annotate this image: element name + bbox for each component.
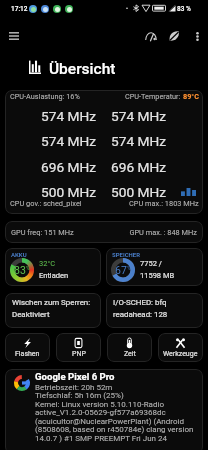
staticText: (acuicultor@NuclearPowerPlant) (Android xyxy=(35,417,184,426)
staticText: CPU max.: 1803 MHz xyxy=(129,199,199,208)
staticText: 7752 / xyxy=(140,259,162,268)
staticText: % xyxy=(26,265,30,271)
staticText: 11598 MB xyxy=(140,271,175,280)
staticText: active_V1.2.0-05629-gf577a69368dc xyxy=(35,408,166,417)
button[interactable]: Navigation menu xyxy=(3,25,25,47)
staticText: 14.0.7 ) #1 SMP PREEMPT Fri Jun 24 xyxy=(35,434,168,443)
staticText: 83 xyxy=(14,264,26,276)
button[interactable]: More options xyxy=(188,27,206,45)
button[interactable]: Google Pixel 6 Pro xyxy=(5,369,203,450)
staticText: Flashen xyxy=(15,350,40,358)
staticText: Deaktiviert xyxy=(12,310,50,319)
staticText: CPU-Auslastung: 16% xyxy=(10,92,80,101)
staticText: % xyxy=(127,265,131,271)
button[interactable]: Zeit xyxy=(107,333,152,362)
staticText: 696 MHz xyxy=(111,159,166,175)
staticText: 696 MHz xyxy=(5,159,96,175)
staticText: GPU freq: 151 MHz xyxy=(11,228,104,237)
staticText: 83 % xyxy=(177,5,191,13)
staticText: Wischen zum Sperren: xyxy=(12,298,91,307)
staticText: I/O-SCHED: bfq xyxy=(113,298,167,307)
staticText: 500 MHz xyxy=(5,184,96,200)
button[interactable]: Performance profile xyxy=(141,26,161,46)
staticText: SPEICHER xyxy=(112,251,141,258)
staticText: PNP xyxy=(72,350,86,358)
button[interactable]: SPEICHER xyxy=(106,248,203,286)
staticText: Google Pixel 6 Pro xyxy=(35,371,115,382)
staticText: Betriebszeit: 20h 52m xyxy=(35,383,113,392)
staticText: Übersicht xyxy=(49,60,116,78)
staticText: CPU-Temperatur: xyxy=(125,92,183,101)
staticText: 574 MHz xyxy=(111,108,166,124)
staticText: 574 MHz xyxy=(111,133,166,149)
staticText: AKKU xyxy=(11,251,27,258)
button[interactable]: Eco mode xyxy=(164,26,184,46)
staticText: Kernel: Linux version 5.10.110-Radio xyxy=(35,400,164,409)
button[interactable]: Werkzeuge xyxy=(158,333,203,362)
button[interactable]: PNP xyxy=(56,333,101,362)
staticText: (8508608, based on r450784e) clang versi… xyxy=(35,425,194,434)
staticText: 67 xyxy=(115,264,127,276)
staticText: CPU gov.: sched_pixel xyxy=(10,199,82,208)
staticText: Entladen xyxy=(39,271,69,280)
button[interactable]: Flashen xyxy=(5,333,50,362)
staticText: GPU max. : 848 MHz xyxy=(104,228,197,237)
staticText: Werkzeuge xyxy=(163,350,198,358)
staticText: 89°C xyxy=(183,92,199,101)
staticText: Zeit xyxy=(124,350,136,358)
staticText: 574 MHz xyxy=(5,108,96,124)
button[interactable]: I/O-SCHED: bfq xyxy=(106,293,203,328)
button[interactable]: Wischen zum Sperren: xyxy=(5,293,101,328)
staticText: 574 MHz xyxy=(5,133,96,149)
staticText: readahead: 128 xyxy=(113,310,168,319)
staticText: 32°C xyxy=(39,259,56,268)
button[interactable]: AKKU xyxy=(5,248,101,286)
staticText: 17:12 xyxy=(11,5,28,13)
staticText: 500 MHz xyxy=(111,184,166,200)
staticText: Tiefschlaf: 5h 16m (25%) xyxy=(35,391,124,400)
